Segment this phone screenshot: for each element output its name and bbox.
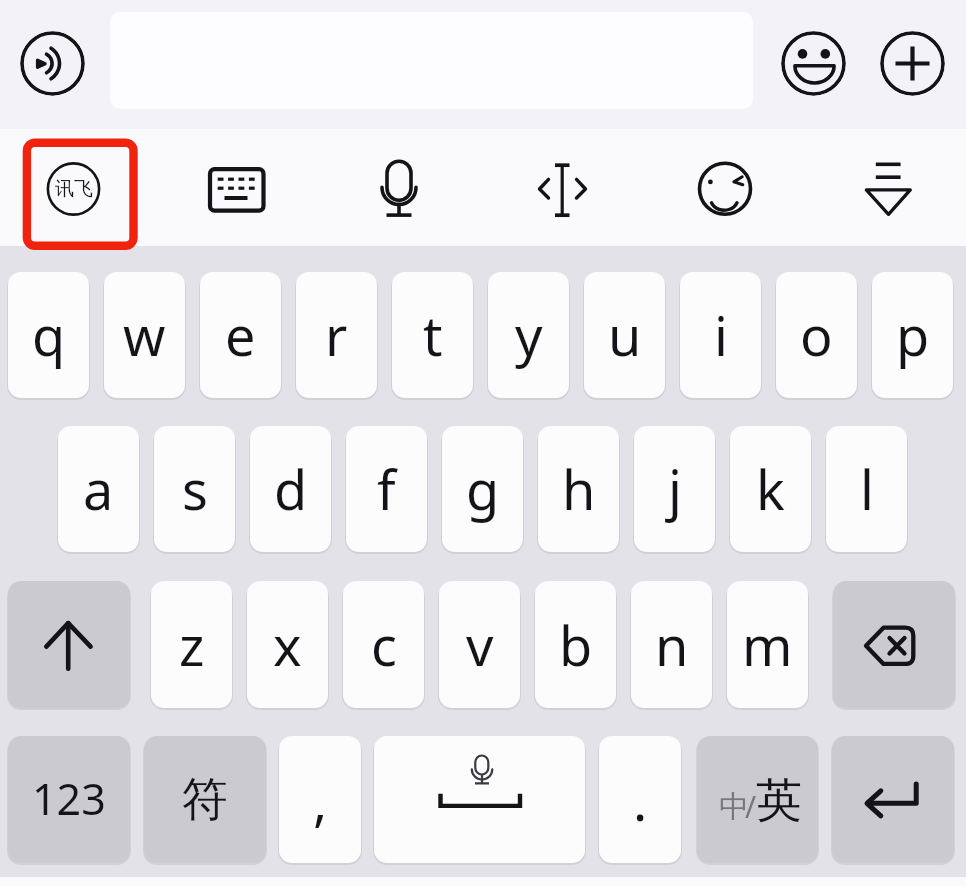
staticText: 讯飞 xyxy=(55,177,93,201)
button[interactable]: r xyxy=(296,272,377,398)
staticText: 中 xyxy=(719,788,749,826)
staticText: s xyxy=(182,452,208,526)
staticText: 123 xyxy=(32,769,106,828)
button[interactable]: n xyxy=(631,581,712,708)
button[interactable]: t xyxy=(392,272,473,398)
staticText: z xyxy=(179,608,205,682)
staticText: r xyxy=(325,298,348,372)
button[interactable]: a xyxy=(58,426,139,552)
button[interactable]: Move cursor xyxy=(506,134,618,246)
button[interactable]: x xyxy=(247,581,328,708)
button[interactable]: f xyxy=(346,426,427,552)
staticText: f xyxy=(377,452,396,526)
staticText: o xyxy=(800,298,833,372)
button[interactable]: g xyxy=(442,426,523,552)
button[interactable]: Keyboard xyxy=(180,134,292,246)
staticText: q xyxy=(32,298,66,372)
staticText: w xyxy=(123,298,166,372)
button[interactable]: Voice input xyxy=(343,134,455,246)
button[interactable]: l xyxy=(826,426,907,552)
staticText: m xyxy=(742,608,793,682)
button[interactable]: . xyxy=(599,736,681,863)
button[interactable]: Emoji xyxy=(781,31,846,96)
staticText: k xyxy=(756,452,785,526)
button[interactable]: o xyxy=(776,272,857,398)
staticText: t xyxy=(423,298,443,372)
button[interactable]: m xyxy=(727,581,808,708)
button[interactable]: c xyxy=(343,581,424,708)
staticText: l xyxy=(860,452,874,526)
button[interactable]: j xyxy=(634,426,715,552)
button[interactable]: Enter xyxy=(832,736,954,863)
staticText: . xyxy=(633,764,648,836)
staticText: 符 xyxy=(182,771,228,829)
button[interactable]: y xyxy=(488,272,569,398)
staticText: p xyxy=(896,298,930,372)
staticText: x xyxy=(273,608,302,682)
staticText: d xyxy=(274,452,308,526)
staticText: a xyxy=(83,452,114,526)
button[interactable]: s xyxy=(154,426,235,552)
button[interactable]: Add xyxy=(880,31,945,96)
staticText: n xyxy=(655,608,689,682)
staticText: h xyxy=(562,452,596,526)
button[interactable]: 符 xyxy=(144,736,266,863)
button[interactable]: 123 xyxy=(8,736,130,863)
button[interactable]: Hide keyboard xyxy=(832,134,944,246)
button[interactable]: Space xyxy=(374,736,585,863)
staticText: u xyxy=(608,298,642,372)
staticText: i xyxy=(714,298,728,372)
button[interactable]: d xyxy=(250,426,331,552)
staticText: j xyxy=(668,452,682,526)
staticText: c xyxy=(371,608,397,682)
staticText: g xyxy=(466,452,500,526)
button[interactable]: Voice message xyxy=(20,31,85,96)
button[interactable]: Switch Chinese English xyxy=(697,736,818,863)
button[interactable]: iFlytek input method xyxy=(14,130,146,258)
button[interactable]: z xyxy=(151,581,232,708)
button[interactable]: i xyxy=(680,272,761,398)
button[interactable]: q xyxy=(8,272,89,398)
button[interactable]: k xyxy=(730,426,811,552)
staticText: e xyxy=(225,298,256,372)
button[interactable]: u xyxy=(584,272,665,398)
button[interactable]: Shift xyxy=(8,581,130,708)
staticText: 英 xyxy=(756,772,802,830)
button[interactable]: w xyxy=(104,272,185,398)
button[interactable]: Backspace xyxy=(833,581,955,708)
staticText: v xyxy=(466,608,494,682)
button[interactable]: h xyxy=(538,426,619,552)
staticText: / xyxy=(745,786,757,827)
staticText: b xyxy=(559,608,593,682)
button[interactable]: v xyxy=(439,581,520,708)
staticText: , xyxy=(313,764,328,836)
button[interactable]: Stickers xyxy=(669,134,781,246)
button[interactable]: b xyxy=(535,581,616,708)
button[interactable]: e xyxy=(200,272,281,398)
button[interactable]: , xyxy=(279,736,361,863)
button[interactable]: p xyxy=(872,272,953,398)
staticText: y xyxy=(515,298,543,372)
